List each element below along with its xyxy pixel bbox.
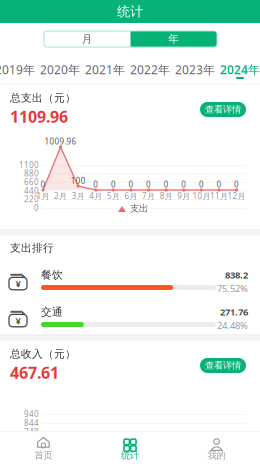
staticText: 0 bbox=[40, 179, 45, 190]
staticText: 75.52% bbox=[217, 282, 248, 295]
staticText: 查看详情 bbox=[205, 104, 241, 115]
staticText: 440 bbox=[24, 185, 39, 196]
staticText: 我的 bbox=[208, 450, 226, 461]
staticText: 月 bbox=[82, 32, 93, 45]
staticText: 1009.96 bbox=[45, 136, 77, 147]
staticText: 0 bbox=[111, 179, 116, 190]
staticText: 2019年 bbox=[0, 61, 35, 77]
staticText: 0 bbox=[234, 179, 239, 190]
staticText: 首页 bbox=[34, 450, 52, 461]
staticText: 5月 bbox=[107, 191, 120, 201]
staticText: 8月 bbox=[160, 191, 173, 201]
staticText: 0 bbox=[199, 179, 204, 190]
staticText: 交通 bbox=[41, 305, 63, 318]
staticText: 1100 bbox=[19, 159, 39, 170]
staticText: 10月 bbox=[192, 191, 210, 201]
staticText: 0 bbox=[164, 179, 169, 190]
staticText: 660 bbox=[24, 177, 39, 187]
staticText: 2021年 bbox=[85, 61, 125, 77]
staticText: 24.48% bbox=[217, 319, 248, 332]
button[interactable]: 年 bbox=[130, 31, 217, 47]
staticText: 9月 bbox=[177, 191, 190, 201]
staticText: 总支出（元） bbox=[10, 91, 76, 104]
button[interactable]: 首页 bbox=[0, 431, 87, 464]
staticText: 0 bbox=[93, 179, 98, 190]
staticText: 统计 bbox=[117, 3, 143, 20]
staticText: 3月 bbox=[72, 191, 85, 201]
button[interactable]: ¥ bbox=[0, 307, 260, 329]
staticText: 0 bbox=[146, 179, 151, 190]
staticText: 0 bbox=[181, 179, 186, 190]
staticText: 0 bbox=[34, 202, 39, 213]
button[interactable]: 2022年 bbox=[131, 64, 169, 79]
staticText: 1109.96 bbox=[10, 106, 68, 127]
staticText: 2023年 bbox=[175, 61, 215, 77]
staticText: 838.2 bbox=[225, 269, 248, 281]
staticText: 0 bbox=[216, 179, 221, 190]
staticText: 12月 bbox=[228, 191, 246, 201]
button[interactable]: 查看详情 bbox=[200, 102, 246, 117]
staticText: ¥ bbox=[15, 314, 20, 327]
staticText: 1月 bbox=[36, 191, 49, 201]
staticText: 年 bbox=[168, 32, 179, 45]
staticText: 2020年 bbox=[40, 61, 80, 77]
staticText: 880 bbox=[24, 168, 39, 179]
button[interactable]: 2021年 bbox=[86, 64, 124, 79]
staticText: 6月 bbox=[124, 191, 137, 201]
button[interactable]: ¥ bbox=[0, 270, 260, 292]
button[interactable]: 查看详情 bbox=[200, 358, 246, 373]
staticText: 7月 bbox=[142, 191, 155, 201]
staticText: 统计 bbox=[121, 450, 139, 461]
button[interactable]: 我的 bbox=[173, 431, 260, 464]
staticText: 2月 bbox=[54, 191, 67, 201]
staticText: 总收入（元） bbox=[10, 347, 76, 360]
staticText: 支出 bbox=[130, 203, 148, 214]
staticText: 467.61 bbox=[10, 362, 59, 383]
staticText: 940 bbox=[24, 408, 39, 419]
staticText: 0 bbox=[128, 179, 133, 190]
staticText: ¥ bbox=[15, 277, 20, 290]
staticText: 271.76 bbox=[220, 306, 248, 318]
button[interactable]: 月 bbox=[44, 31, 130, 47]
staticText: 652 bbox=[24, 435, 39, 446]
staticText: 4月 bbox=[89, 191, 102, 201]
button[interactable]: 2020年 bbox=[41, 64, 79, 79]
button[interactable]: 2024年 bbox=[221, 64, 259, 79]
button[interactable]: 2023年 bbox=[176, 64, 214, 79]
staticText: 餐饮 bbox=[41, 268, 63, 281]
staticText: 844 bbox=[24, 417, 39, 428]
button[interactable]: 2019年 bbox=[0, 64, 34, 79]
staticText: 2022年 bbox=[130, 61, 170, 77]
staticText: 100 bbox=[71, 175, 86, 186]
staticText: 支出排行 bbox=[10, 241, 54, 254]
staticText: 查看详情 bbox=[205, 360, 241, 371]
staticText: 748 bbox=[24, 426, 39, 437]
staticText: 2024年 bbox=[220, 61, 260, 77]
button[interactable]: 统计 bbox=[87, 431, 173, 464]
staticText: 11月 bbox=[210, 191, 228, 201]
staticText: 220 bbox=[24, 194, 39, 204]
